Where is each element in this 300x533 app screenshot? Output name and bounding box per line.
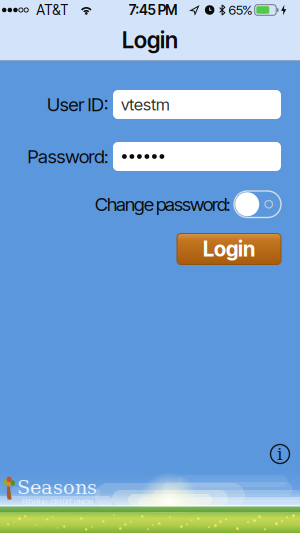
staticText: Login [203, 236, 255, 261]
staticText: vtestm [121, 94, 170, 115]
staticText: Seasons [17, 476, 97, 498]
staticText: Change password: [95, 193, 230, 216]
button[interactable]: Info [270, 444, 289, 463]
staticText: Login [122, 26, 178, 54]
staticText: i [277, 444, 283, 464]
staticText: AT&T [36, 1, 68, 18]
staticText: Password: [27, 145, 108, 168]
staticText: FEDERAL CREDIT UNION [22, 498, 93, 506]
button[interactable]: Change password [234, 191, 281, 217]
staticText: User ID: [47, 93, 108, 116]
staticText: 65% [228, 2, 252, 18]
button[interactable]: Login [177, 233, 281, 264]
staticText: 7:45 PM [129, 1, 177, 18]
textField[interactable]: vtestm [121, 94, 281, 115]
